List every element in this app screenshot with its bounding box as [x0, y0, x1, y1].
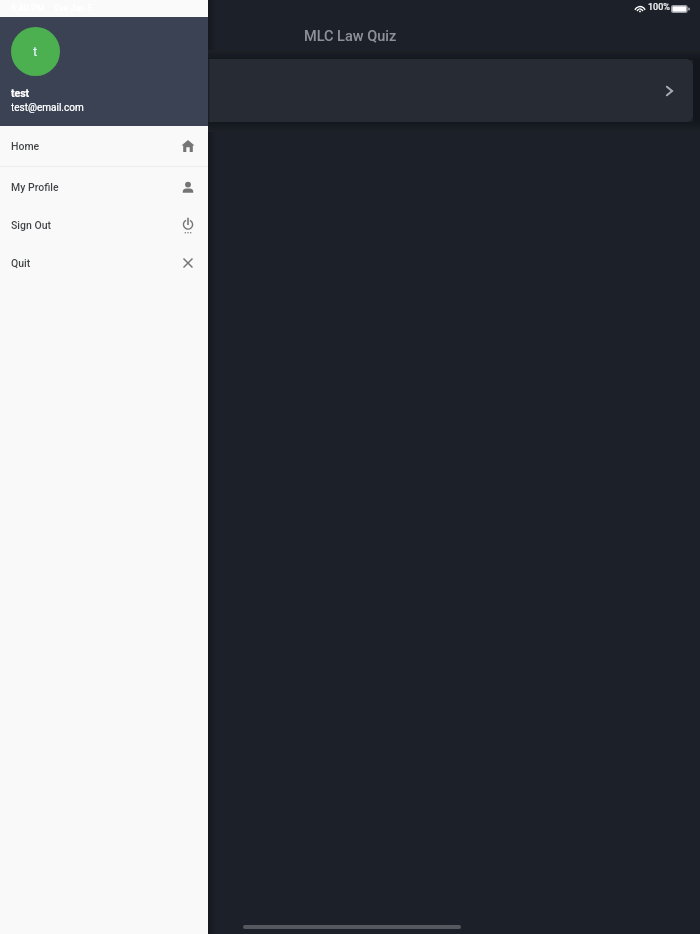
button[interactable]: Quit	[0, 244, 208, 282]
staticText: t	[33, 44, 38, 59]
button[interactable]: Sign Out	[0, 206, 208, 244]
staticText: test@email.com	[11, 102, 84, 114]
other: Wi-Fi	[635, 5, 645, 12]
staticText: Quit	[11, 257, 31, 269]
staticText: MLC Law Quiz	[304, 28, 397, 45]
staticText: Home	[11, 140, 40, 152]
other: Battery full	[671, 5, 690, 13]
staticText: test	[11, 87, 30, 99]
staticText: 100%	[648, 2, 670, 13]
other: Open quiz	[661, 83, 677, 99]
button[interactable]: My Profile	[0, 167, 208, 206]
staticText: My Profile	[11, 181, 59, 193]
staticText: Sign Out	[11, 219, 52, 231]
button[interactable]: Open quiz	[8, 59, 693, 122]
button[interactable]: Home	[0, 126, 208, 166]
